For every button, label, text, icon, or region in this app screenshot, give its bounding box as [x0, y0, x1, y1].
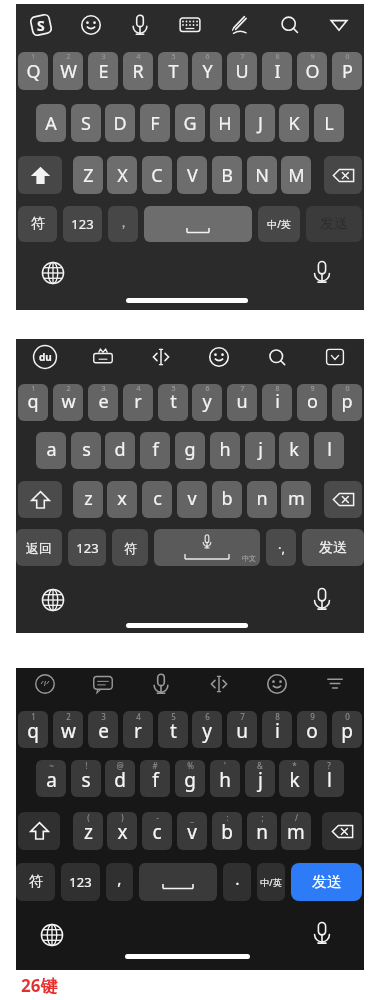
button[interactable]: t [158, 711, 188, 748]
button[interactable]: p [332, 711, 362, 748]
button[interactable]: ·, [266, 529, 296, 566]
button[interactable]: h [210, 432, 240, 469]
button[interactable]: X [107, 156, 137, 194]
button[interactable]: j [245, 432, 275, 469]
button[interactable]: Z [73, 156, 103, 194]
button[interactable]: 发送 [306, 206, 362, 242]
button[interactable]: x [107, 812, 137, 850]
button[interactable]: 符 [18, 206, 57, 242]
button[interactable]: W [53, 52, 83, 90]
button[interactable] [92, 346, 114, 368]
button[interactable] [18, 812, 60, 850]
button[interactable]: Y [192, 52, 222, 90]
button[interactable]: 发送 [291, 863, 362, 901]
button[interactable]: x [107, 481, 137, 518]
button[interactable]: 123 [68, 529, 106, 566]
button[interactable]: r [123, 384, 153, 421]
button[interactable]: a [36, 760, 66, 797]
button[interactable]: O [297, 52, 327, 90]
button[interactable]: r [123, 711, 153, 748]
button[interactable]: q [18, 384, 48, 421]
button[interactable] [279, 14, 301, 36]
button[interactable]: s [71, 432, 101, 469]
button[interactable]: I [262, 52, 292, 90]
button[interactable]: l [314, 760, 344, 797]
button[interactable]: u [227, 384, 257, 421]
button[interactable] [324, 481, 362, 518]
button[interactable]: o [297, 711, 327, 748]
button[interactable]: m [281, 481, 311, 518]
button[interactable]: w [53, 711, 83, 748]
button[interactable]: E [88, 52, 118, 90]
button[interactable]: n [247, 481, 277, 518]
button[interactable]: K [279, 104, 309, 142]
button[interactable] [328, 14, 350, 36]
button[interactable] [34, 673, 56, 695]
button[interactable] [92, 673, 114, 695]
button[interactable]: z [73, 812, 103, 850]
button[interactable]: e [88, 711, 118, 748]
button[interactable]: R [123, 52, 153, 90]
button[interactable]: y [192, 384, 222, 421]
button[interactable] [325, 347, 345, 367]
button[interactable] [150, 673, 172, 695]
button[interactable]: B [212, 156, 242, 194]
button[interactable]: n [247, 812, 277, 850]
button[interactable] [267, 347, 288, 368]
button[interactable]: v [177, 481, 207, 518]
button[interactable] [40, 923, 64, 947]
button[interactable]: m [281, 812, 311, 850]
button[interactable]: A [36, 104, 66, 142]
button[interactable] [322, 812, 362, 850]
button[interactable] [179, 14, 201, 36]
button[interactable]: d [105, 432, 135, 469]
button[interactable]: o [297, 384, 327, 421]
button[interactable]: T [158, 52, 188, 90]
button[interactable]: i [262, 384, 292, 421]
button[interactable] [41, 261, 65, 285]
button[interactable] [18, 156, 62, 194]
button[interactable]: p [332, 384, 362, 421]
button[interactable]: z [73, 481, 103, 518]
button[interactable] [139, 863, 217, 901]
button[interactable] [18, 481, 62, 518]
button[interactable]: L [314, 104, 344, 142]
button[interactable]: 123 [61, 863, 100, 901]
button[interactable]: 符 [16, 863, 55, 901]
button[interactable] [32, 344, 58, 370]
button[interactable]: N [247, 156, 277, 194]
button[interactable] [209, 674, 229, 694]
button[interactable] [28, 12, 54, 38]
button[interactable]: v [177, 812, 207, 850]
button[interactable]: g [175, 760, 205, 797]
button[interactable]: H [210, 104, 240, 142]
button[interactable]: h [210, 760, 240, 797]
button[interactable]: k [279, 432, 309, 469]
button[interactable]: 符 [112, 529, 148, 566]
button[interactable]: s [71, 760, 101, 797]
button[interactable] [80, 14, 102, 36]
button[interactable]: c [142, 812, 172, 850]
button[interactable]: a [36, 432, 66, 469]
button[interactable] [144, 206, 252, 242]
button[interactable]: U [227, 52, 257, 90]
button[interactable]: S [71, 104, 101, 142]
button[interactable]: . [223, 863, 251, 901]
button[interactable]: , [106, 863, 133, 901]
button[interactable]: D [105, 104, 135, 142]
button[interactable]: f [140, 432, 170, 469]
button[interactable]: j [245, 760, 275, 797]
button[interactable]: F [140, 104, 170, 142]
button[interactable]: u [227, 711, 257, 748]
button[interactable] [325, 674, 345, 694]
button[interactable]: P [332, 52, 362, 90]
button[interactable] [310, 260, 334, 284]
button[interactable]: J [245, 104, 275, 142]
button[interactable]: C [142, 156, 172, 194]
button[interactable] [129, 14, 151, 36]
button[interactable] [266, 673, 288, 695]
button[interactable]: 返回 [16, 529, 62, 566]
button[interactable] [151, 347, 171, 367]
button[interactable]: G [175, 104, 205, 142]
button[interactable]: ， [108, 206, 138, 242]
